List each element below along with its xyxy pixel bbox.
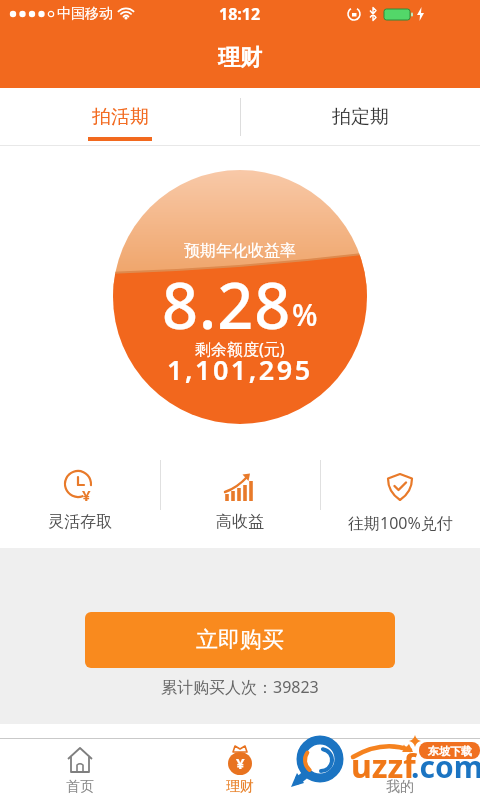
staticText: 我的: [386, 778, 414, 796]
staticText: 立即购买: [196, 626, 284, 654]
staticText: %: [292, 294, 318, 335]
button[interactable]: 首页: [0, 739, 160, 800]
staticText: .com: [411, 746, 480, 787]
staticText: ¥: [236, 753, 245, 773]
button[interactable]: 往期100%兑付: [320, 468, 480, 534]
staticText: 拍定期: [332, 105, 389, 129]
staticText: 剩余额度(元): [195, 338, 285, 360]
button[interactable]: 我的: [320, 739, 480, 800]
staticText: 18:12: [219, 3, 261, 25]
staticText: 累计购买人次：39823: [161, 676, 319, 698]
staticText: 拍活期: [92, 105, 149, 129]
button[interactable]: 高收益: [160, 468, 320, 532]
staticText: uzzf: [351, 744, 416, 788]
button[interactable]: 拍定期: [240, 88, 480, 146]
staticText: 往期100%兑付: [348, 512, 453, 534]
staticText: 中国移动: [57, 5, 113, 23]
staticText: 东坡下载: [428, 744, 472, 758]
staticText: 8.28: [162, 262, 292, 348]
button[interactable]: 拍活期: [0, 88, 240, 146]
staticText: 高收益: [216, 512, 264, 532]
button[interactable]: ¥: [160, 739, 320, 800]
staticText: 预期年化收益率: [184, 241, 296, 261]
staticText: 1,101,295: [167, 351, 313, 388]
button[interactable]: ¥: [0, 468, 160, 532]
button[interactable]: 立即购买: [85, 612, 395, 668]
staticText: ¥: [82, 485, 91, 505]
staticText: 理财: [226, 778, 254, 796]
staticText: 首页: [66, 778, 94, 796]
staticText: 灵活存取: [48, 512, 112, 532]
staticText: 理财: [218, 44, 262, 72]
